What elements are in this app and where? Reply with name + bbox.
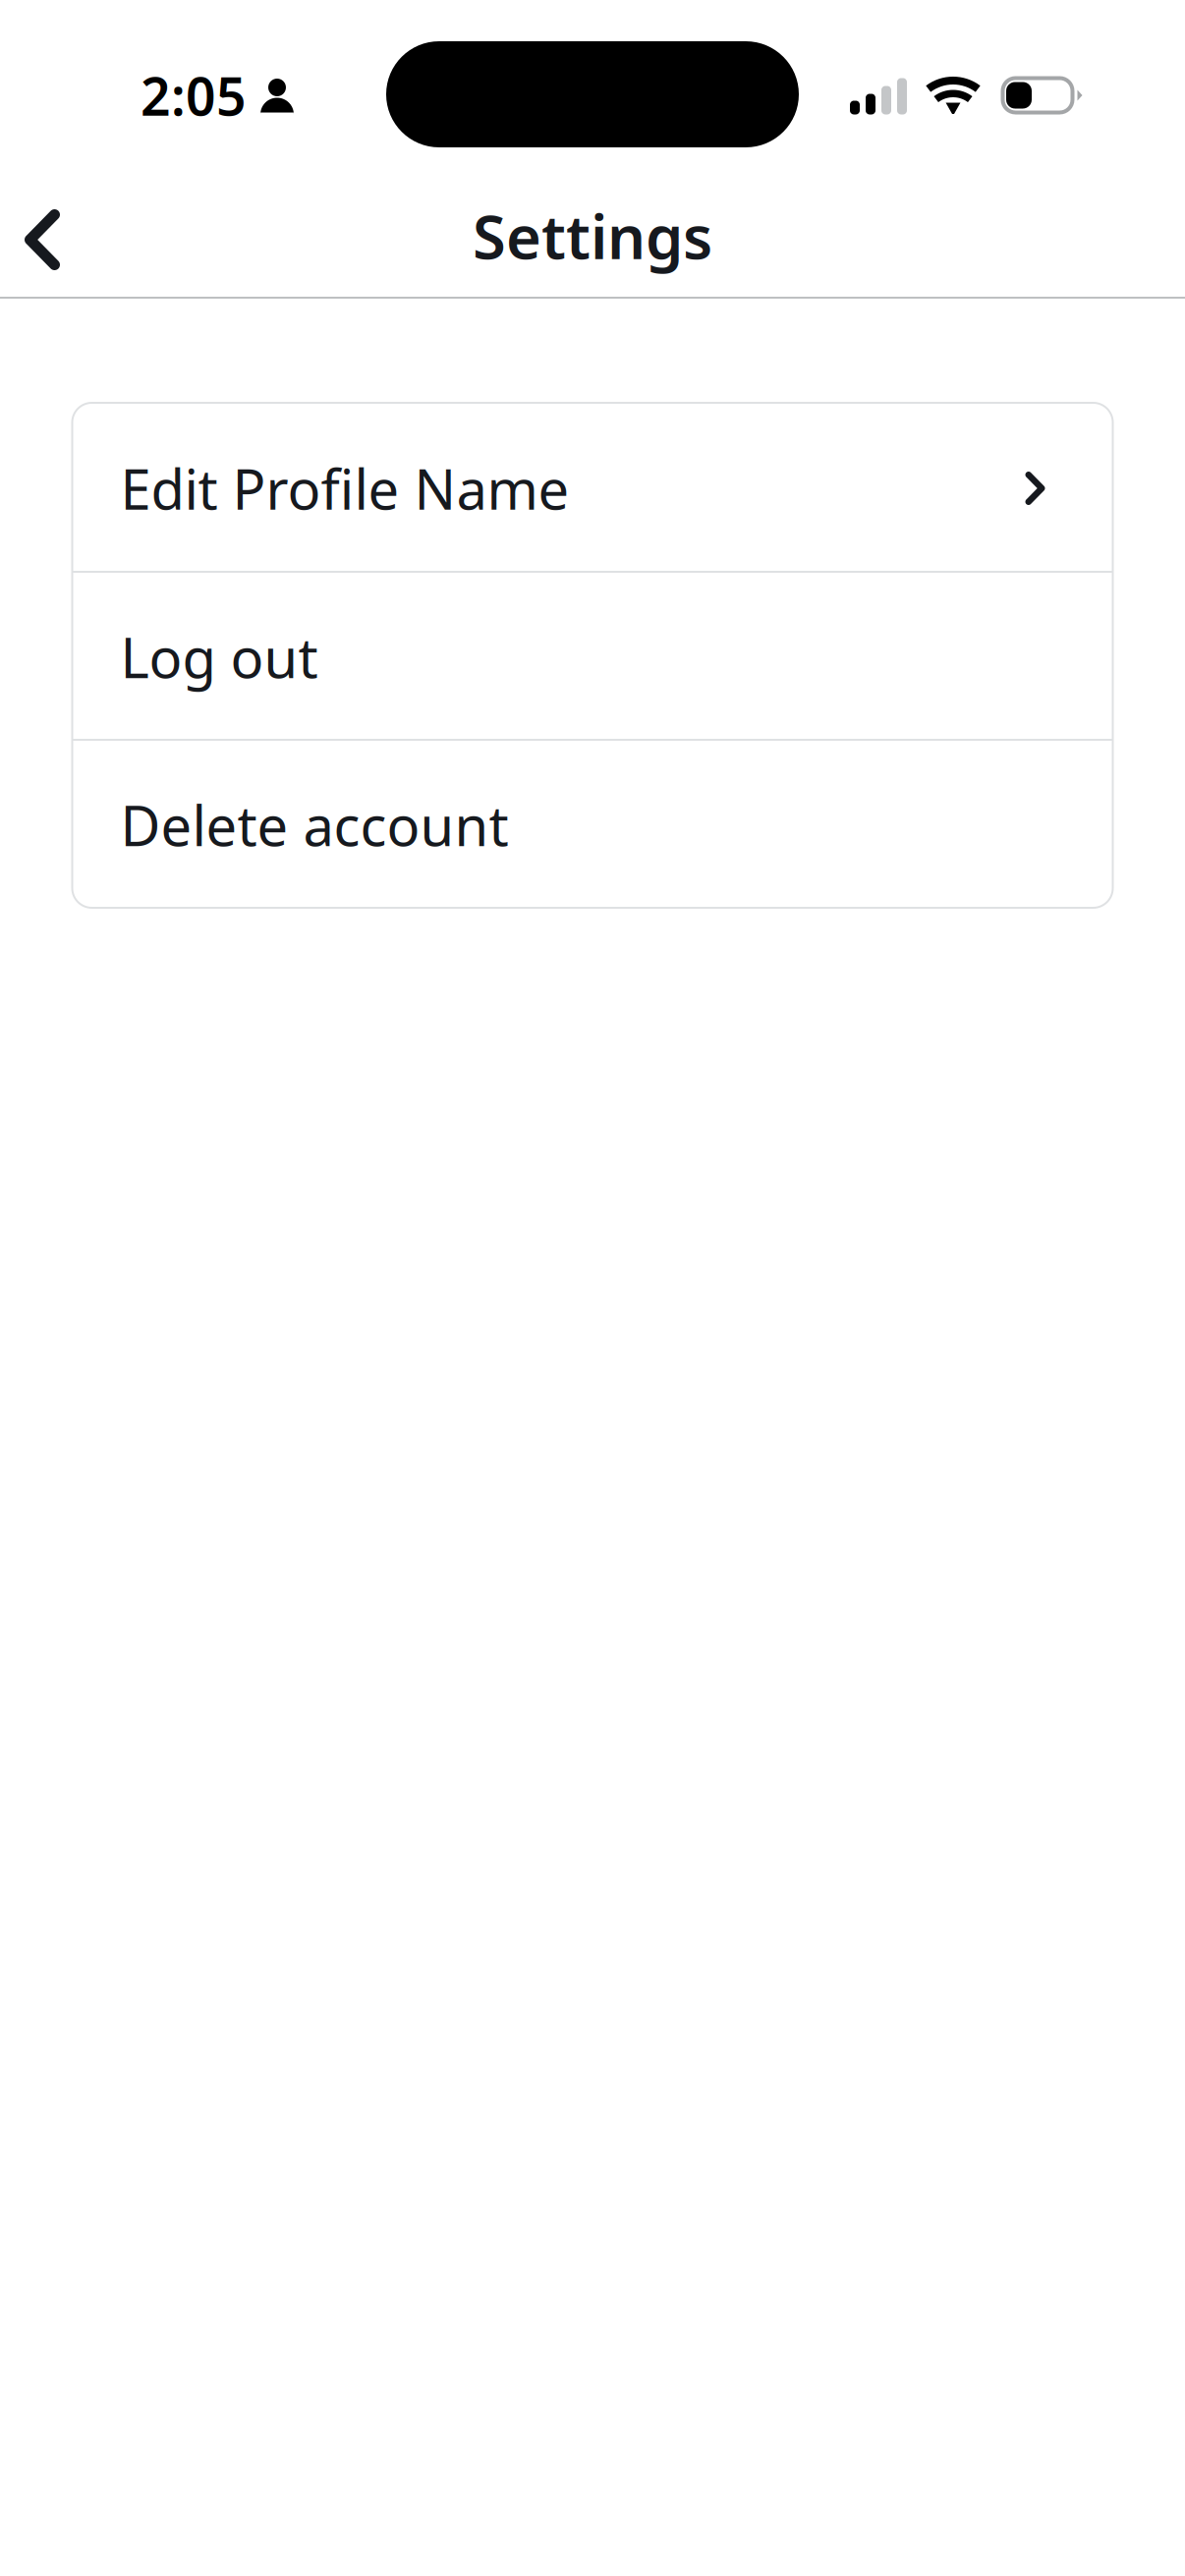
staticText: Settings	[473, 196, 712, 276]
button[interactable]: Edit Profile Name	[72, 403, 1113, 571]
button[interactable]: Delete account	[72, 740, 1113, 908]
button[interactable]: Back	[0, 177, 130, 302]
staticText: Delete account	[120, 788, 508, 861]
button[interactable]: Log out	[72, 572, 1113, 740]
staticText: Log out	[120, 620, 318, 693]
staticText: 2:05	[141, 61, 247, 130]
staticText: Edit Profile Name	[120, 452, 569, 525]
